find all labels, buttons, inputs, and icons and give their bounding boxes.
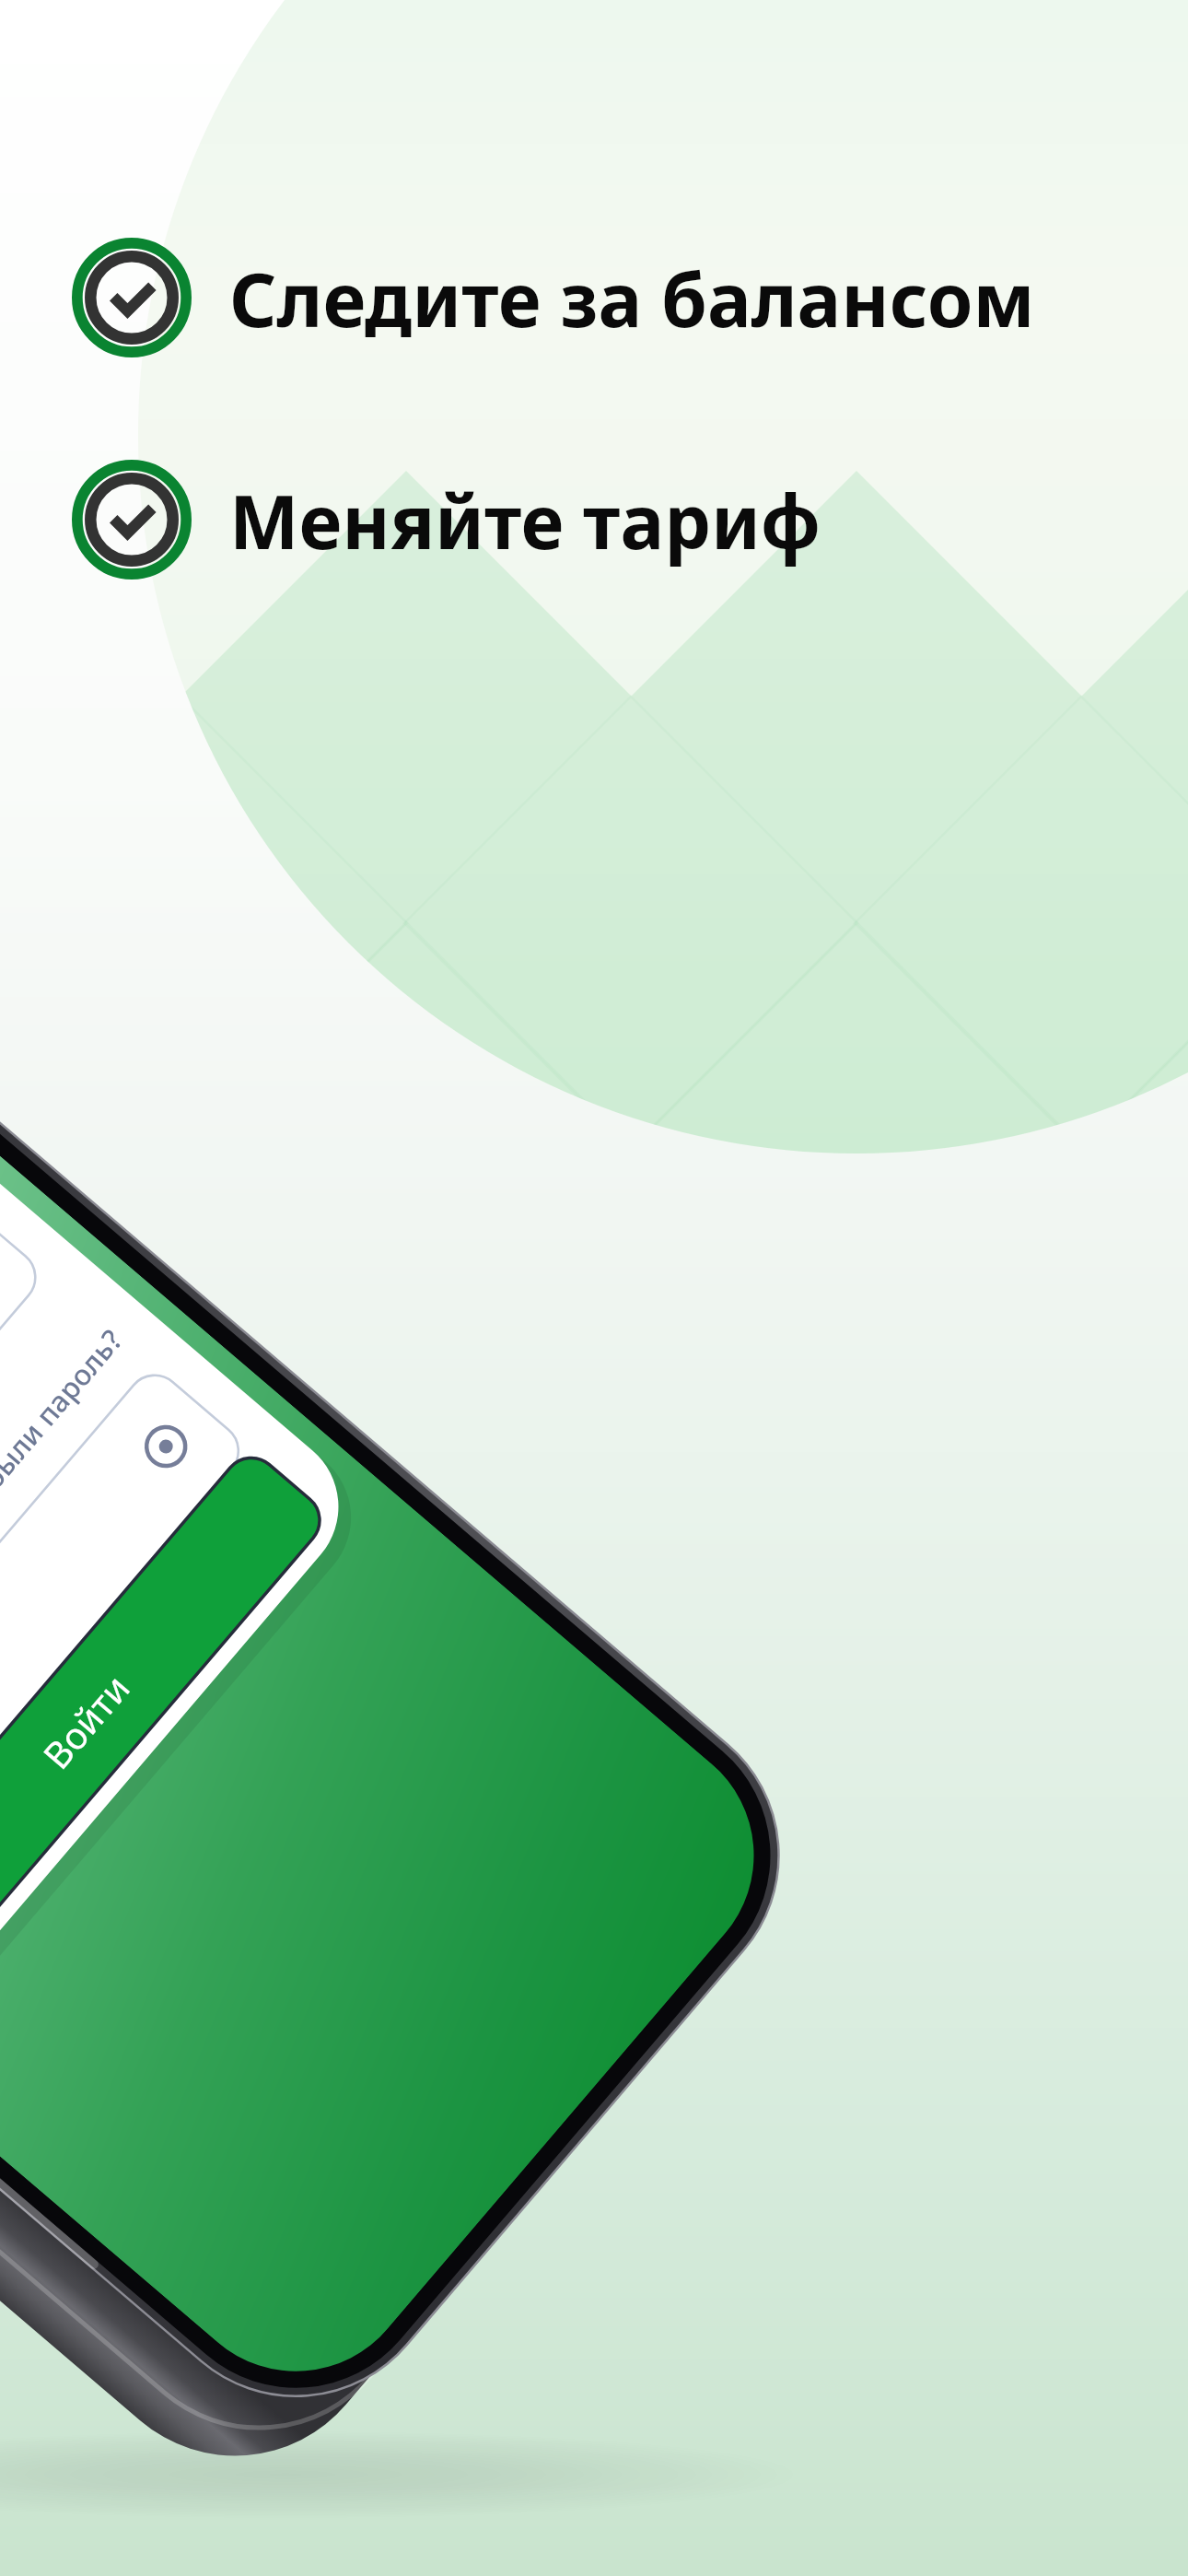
staticText: Меняйте тариф — [229, 470, 821, 570]
other: Отмечено — [72, 460, 192, 580]
other: Отмечено — [72, 238, 192, 357]
staticText: Следите за балансом — [229, 248, 1035, 348]
button[interactable]: Отмечено — [72, 238, 1035, 357]
button[interactable]: Отмечено — [72, 460, 821, 580]
